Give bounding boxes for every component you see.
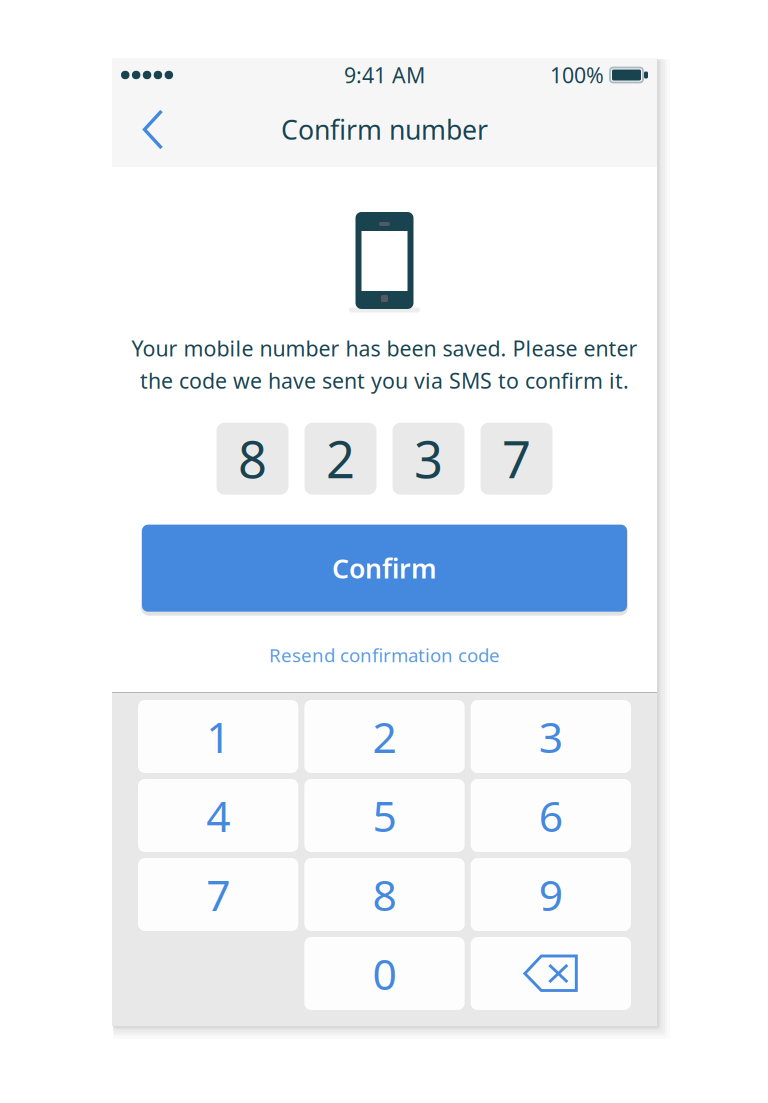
button[interactable]: Confirm — [140, 522, 629, 615]
button[interactable]: 9 — [471, 858, 631, 931]
button[interactable]: 6 — [471, 779, 631, 852]
button[interactable]: Delete — [471, 937, 631, 1010]
button[interactable]: 8 — [304, 858, 465, 931]
staticText: 8 — [238, 425, 267, 492]
button[interactable]: 0 — [304, 937, 465, 1010]
staticText: 8 — [372, 866, 396, 923]
staticText: the code we have sent you via SMS to con… — [140, 366, 629, 395]
staticText: 9:41 AM — [344, 61, 425, 89]
button[interactable]: Back — [124, 95, 182, 164]
staticText: Your mobile number has been saved. Pleas… — [131, 334, 637, 362]
staticText: Confirm — [332, 550, 437, 586]
staticText: 7 — [502, 425, 531, 492]
staticText: 9 — [539, 866, 563, 923]
staticText: 0 — [372, 945, 396, 1002]
button[interactable]: 1 — [138, 700, 298, 773]
staticText: 4 — [206, 787, 230, 844]
staticText: 2 — [372, 708, 396, 765]
staticText: 7 — [206, 866, 230, 923]
button[interactable]: 5 — [304, 779, 465, 852]
staticText: Confirm number — [281, 112, 488, 147]
staticText: 3 — [539, 708, 563, 765]
staticText: 5 — [372, 787, 396, 844]
button[interactable]: 2 — [304, 700, 465, 773]
staticText: 2 — [326, 425, 355, 492]
staticText: 1 — [206, 708, 230, 765]
button[interactable]: 4 — [138, 779, 298, 852]
button[interactable]: 7 — [138, 858, 298, 931]
button[interactable]: 3 — [471, 700, 631, 773]
staticText: 6 — [539, 787, 563, 844]
staticText: 3 — [414, 425, 443, 492]
button[interactable]: Resend confirmation code — [269, 643, 500, 667]
staticText: 100% — [550, 61, 604, 89]
staticText: Resend confirmation code — [269, 643, 500, 667]
